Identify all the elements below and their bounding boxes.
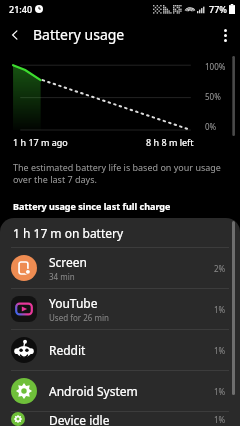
staticText: 34 min [49, 271, 75, 282]
staticText: 21:40 [9, 3, 33, 15]
staticText: Battery usage [33, 25, 125, 44]
button[interactable]: More options [210, 20, 240, 50]
staticText: Android System [49, 383, 138, 399]
staticText: 8 h 8 m left [146, 136, 194, 148]
button[interactable]: Device idle [0, 412, 240, 426]
staticText: 1% [214, 345, 226, 356]
staticText: 50% [205, 91, 221, 102]
button[interactable]: Reddit [0, 330, 240, 370]
staticText: 1% [214, 414, 226, 425]
staticText: 0% [205, 121, 217, 132]
button[interactable]: YouTube [0, 289, 240, 329]
staticText: YouTube [49, 295, 98, 311]
staticText: 1% [214, 304, 226, 315]
staticText: 77% [209, 3, 227, 15]
staticText: Screen [49, 254, 88, 270]
staticText: 2% [214, 263, 226, 274]
button[interactable]: Android System [0, 371, 240, 411]
staticText: Battery usage since last full charge [13, 200, 171, 212]
staticText: 1% [214, 386, 226, 397]
staticText: The estimated battery life is based on y… [13, 161, 226, 186]
staticText: Reddit [49, 342, 86, 358]
staticText: 1 h 17 m ago [13, 136, 68, 148]
staticText: 100% [205, 61, 226, 72]
staticText: Device idle [49, 412, 110, 426]
staticText: 1 h 17 m on battery [13, 225, 124, 241]
button[interactable]: Screen [0, 248, 240, 288]
button[interactable]: Back [0, 20, 30, 50]
staticText: Used for 26 min [49, 312, 109, 323]
